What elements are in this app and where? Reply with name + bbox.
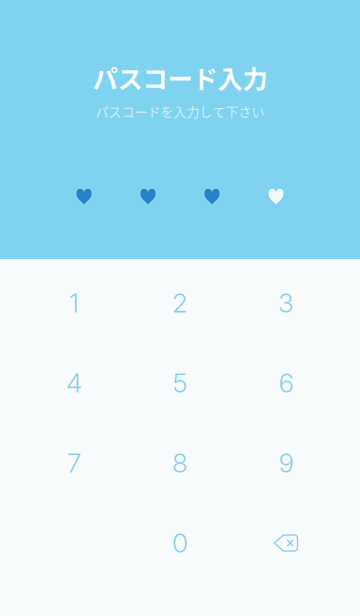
button[interactable]: 0: [127, 503, 233, 583]
staticText: 2: [172, 287, 188, 319]
staticText: パスコード入力: [92, 59, 267, 96]
staticText: 8: [172, 447, 188, 479]
button[interactable]: Delete: [233, 503, 339, 583]
button[interactable]: 4: [21, 343, 127, 423]
staticText: パスコードを入力して下さい: [95, 102, 264, 120]
button[interactable]: 8: [127, 423, 233, 503]
button[interactable]: 6: [233, 343, 339, 423]
button[interactable]: 1: [21, 263, 127, 343]
staticText: 6: [278, 367, 293, 399]
staticText: 7: [67, 447, 81, 479]
staticText: 5: [172, 367, 187, 399]
button[interactable]: 7: [21, 423, 127, 503]
staticText: 1: [69, 287, 79, 319]
staticText: 9: [278, 447, 293, 479]
button[interactable]: 2: [127, 263, 233, 343]
button[interactable]: 3: [233, 263, 339, 343]
staticText: 0: [172, 527, 188, 559]
staticText: 4: [66, 367, 82, 399]
staticText: 3: [278, 287, 294, 319]
button[interactable]: 5: [127, 343, 233, 423]
button[interactable]: 9: [233, 423, 339, 503]
